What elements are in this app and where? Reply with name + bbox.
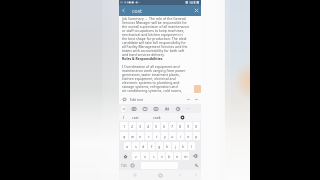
staticText: r <box>148 134 150 139</box>
button[interactable]: 1 <box>120 122 128 130</box>
staticText: 5 <box>155 124 158 129</box>
staticText: b <box>168 154 171 159</box>
button[interactable]: Expand toolbar <box>121 106 126 112</box>
staticText: 2 <box>131 124 134 129</box>
button[interactable]: i <box>177 132 184 140</box>
button[interactable]: Minimise <box>186 97 191 102</box>
button[interactable]: b <box>166 152 173 160</box>
button[interactable]: z <box>132 152 140 160</box>
staticText: c <box>153 154 155 159</box>
staticText: p <box>195 134 198 139</box>
button[interactable]: Search <box>121 96 127 102</box>
staticText: 9 <box>187 124 190 129</box>
button[interactable]: 8 <box>177 122 184 130</box>
button[interactable]: I <box>119 113 128 121</box>
button[interactable]: n <box>174 152 181 160</box>
button[interactable]: k <box>180 142 187 150</box>
button[interactable]: 9 <box>185 122 192 130</box>
staticText: u <box>171 134 174 139</box>
staticText: j <box>175 144 176 149</box>
staticText: cost <box>132 115 139 120</box>
button[interactable]: y <box>161 132 168 140</box>
button[interactable]: 4 <box>145 122 152 130</box>
button[interactable]: Close <box>194 97 199 102</box>
button[interactable]: 7 <box>169 122 176 130</box>
button[interactable]: Keyboard tool 3 <box>152 105 159 112</box>
button[interactable]: Recents <box>132 172 138 178</box>
button[interactable]: Menu <box>193 172 199 178</box>
staticText: 7 <box>171 124 174 129</box>
button[interactable]: p <box>193 132 200 140</box>
staticText: 6 <box>163 124 166 129</box>
staticText: 3 <box>139 124 142 129</box>
button[interactable]: 2 <box>129 122 136 130</box>
button[interactable]: 0 <box>193 122 200 130</box>
staticText: ?123 <box>121 164 127 168</box>
button[interactable]: x <box>141 152 149 160</box>
button[interactable]: More tools <box>185 105 192 112</box>
staticText: x <box>144 154 147 159</box>
button[interactable]: m <box>182 152 189 160</box>
staticText: e <box>139 134 142 139</box>
button[interactable]: r <box>145 132 152 140</box>
button[interactable]: cost <box>132 6 193 15</box>
staticText: s <box>135 144 137 149</box>
button[interactable]: Shift <box>120 152 131 160</box>
button[interactable]: Keyboard tool 5 <box>174 105 181 112</box>
button[interactable]: cost <box>128 113 142 121</box>
staticText: Edit text <box>130 97 144 102</box>
button[interactable]: w <box>129 132 136 140</box>
button[interactable]: l <box>188 142 195 150</box>
staticText: 4 <box>147 124 150 129</box>
staticText: k <box>182 144 185 149</box>
button[interactable]: v <box>158 152 165 160</box>
button[interactable]: q <box>120 132 128 140</box>
button[interactable]: Keyboard tool 4 <box>163 105 170 112</box>
button[interactable]: Back <box>120 7 127 14</box>
button[interactable]: Backspace <box>190 152 200 160</box>
button[interactable]: s <box>132 142 139 150</box>
staticText: f <box>151 144 153 149</box>
button[interactable]: ?123 <box>121 162 127 169</box>
staticText: h <box>166 144 169 149</box>
staticText: w <box>131 134 134 139</box>
button[interactable]: o <box>185 132 192 140</box>
button[interactable]: h <box>164 142 171 150</box>
staticText: I <box>123 115 125 120</box>
staticText: a <box>126 144 129 149</box>
staticText: g <box>158 144 161 149</box>
staticText: t <box>156 134 158 139</box>
button[interactable]: 5 <box>153 122 160 130</box>
button[interactable]: 6 <box>161 122 168 130</box>
staticText: cook <box>153 115 161 120</box>
button[interactable]: c <box>150 152 157 160</box>
button[interactable]: Home <box>157 172 164 179</box>
staticText: l <box>191 144 192 149</box>
button[interactable]: Search <box>193 162 199 169</box>
button[interactable]: g <box>156 142 163 150</box>
button[interactable]: Clear search <box>193 7 200 14</box>
button[interactable]: cook <box>142 113 172 121</box>
staticText: n <box>176 154 179 159</box>
button[interactable]: e <box>137 132 144 140</box>
button[interactable]: Keyboard tool 2 <box>141 105 148 112</box>
button[interactable]: Keyboard tool 1 <box>130 105 137 112</box>
button[interactable]: d <box>140 142 147 150</box>
staticText: i <box>180 134 181 139</box>
staticText: cost <box>132 7 142 14</box>
button[interactable]: Back <box>177 172 183 178</box>
staticText: o <box>187 134 190 139</box>
button[interactable]: 3 <box>137 122 144 130</box>
staticText: Roles & Responsibilities <box>122 57 163 61</box>
staticText: 8 <box>179 124 182 129</box>
button[interactable]: j <box>172 142 179 150</box>
staticText: q <box>123 134 126 139</box>
button[interactable]: f <box>148 142 155 150</box>
button[interactable]: Emoji <box>129 162 135 169</box>
button[interactable]: t <box>153 132 160 140</box>
staticText: y <box>164 134 166 139</box>
button[interactable]: u <box>169 132 176 140</box>
button[interactable]: More suggestions <box>172 113 192 121</box>
button[interactable]: a <box>124 142 131 150</box>
